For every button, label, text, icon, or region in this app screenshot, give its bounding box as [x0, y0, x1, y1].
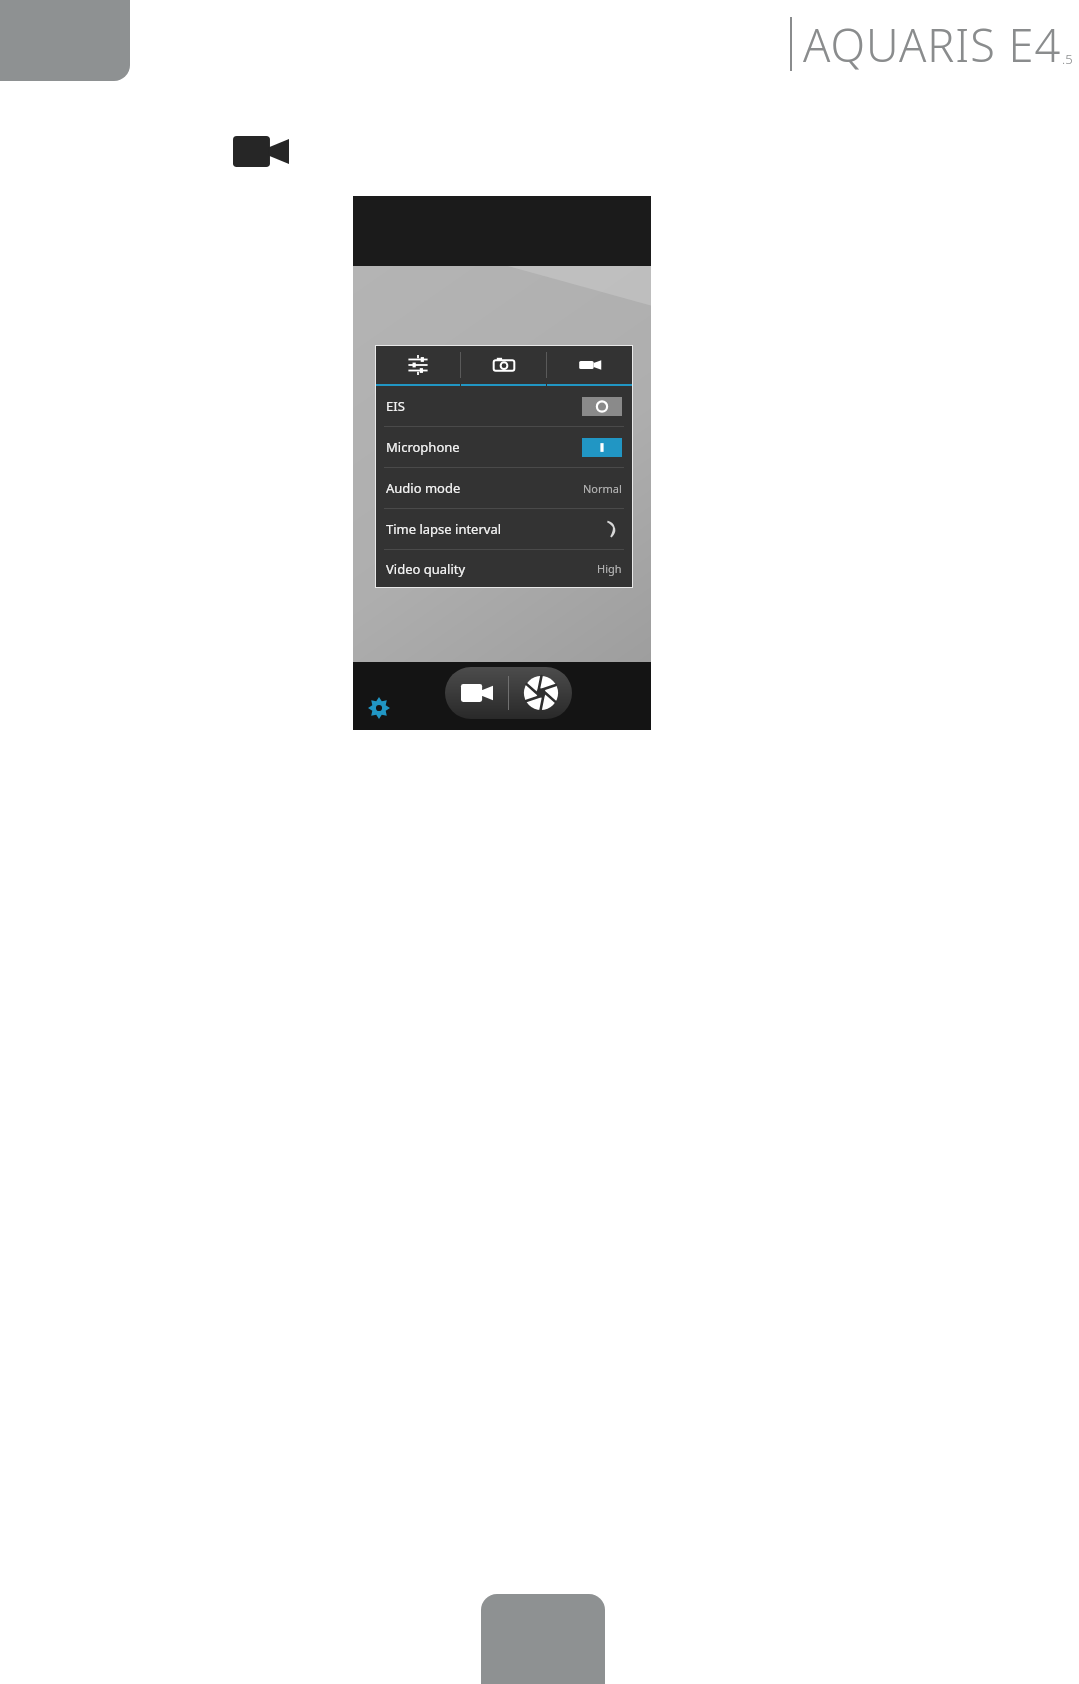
- button[interactable]: Time lapse interval: [376, 509, 632, 549]
- button[interactable]: Video quality: [376, 550, 632, 587]
- staticText: EIS: [386, 397, 405, 415]
- staticText: Time lapse interval: [386, 520, 502, 538]
- button[interactable]: Audio mode: [376, 468, 632, 508]
- staticText: Audio mode: [386, 479, 461, 497]
- button[interactable]: General settings: [376, 346, 460, 384]
- staticText: High: [597, 561, 622, 576]
- button[interactable]: Take photo: [509, 667, 572, 719]
- button[interactable]: Settings: [363, 692, 395, 724]
- staticText: .5: [1062, 50, 1073, 68]
- button[interactable]: Video settings: [547, 346, 632, 384]
- button[interactable]: On: [582, 438, 622, 457]
- button[interactable]: Microphone: [376, 427, 632, 467]
- staticText: Microphone: [386, 438, 460, 456]
- staticText: AQUARIS E4: [803, 14, 1062, 75]
- button[interactable]: Photo settings: [461, 346, 546, 384]
- button[interactable]: EIS: [376, 386, 632, 426]
- button[interactable]: Off: [582, 397, 622, 416]
- button[interactable]: Record video: [445, 667, 508, 719]
- staticText: Video quality: [386, 560, 466, 578]
- staticText: Normal: [583, 481, 622, 496]
